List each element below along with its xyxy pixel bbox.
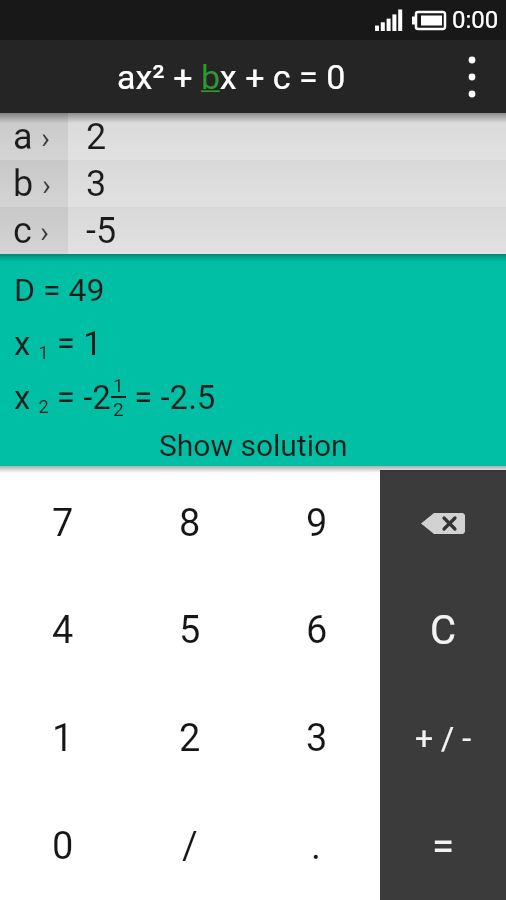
button[interactable] — [380, 470, 506, 577]
staticText: = — [432, 823, 454, 870]
button[interactable]: 0 — [0, 792, 126, 900]
staticText: + / - — [415, 719, 472, 757]
staticText: 1 — [113, 374, 124, 396]
staticText: D = 49 — [14, 271, 105, 309]
staticText: 8 — [179, 501, 201, 546]
staticText: = -2.5 — [126, 378, 216, 417]
staticText: x 2 = -2 — [14, 378, 111, 417]
button[interactable]: 9 — [253, 470, 380, 577]
button[interactable]: 6 — [253, 577, 380, 684]
button[interactable] — [462, 40, 506, 113]
staticText: Show solution — [159, 428, 348, 463]
button[interactable]: c — [0, 207, 506, 254]
staticText: 6 — [306, 608, 328, 653]
button[interactable]: 8 — [126, 470, 253, 577]
staticText: 2 — [179, 716, 201, 761]
button[interactable]: C — [380, 577, 506, 684]
staticText: x 1 = 1 — [14, 324, 102, 363]
staticText: / — [182, 824, 198, 869]
staticText: 3 — [306, 716, 328, 761]
staticText: 3 — [86, 163, 107, 205]
button[interactable]: 5 — [126, 577, 253, 684]
staticText: 2 — [86, 116, 107, 158]
staticText: › — [42, 167, 52, 202]
button[interactable]: . — [253, 792, 380, 900]
staticText: c — [13, 210, 32, 252]
staticText: . — [311, 824, 322, 869]
button[interactable]: 4 — [0, 577, 126, 684]
staticText: › — [41, 120, 51, 155]
button[interactable]: b — [0, 160, 506, 207]
staticText: › — [40, 214, 50, 249]
staticText: C — [430, 607, 457, 654]
button[interactable]: 7 — [0, 470, 126, 577]
button[interactable]: / — [126, 792, 253, 900]
button[interactable]: 2 — [126, 684, 253, 792]
staticText: 4 — [52, 608, 74, 653]
staticText: 2 — [113, 398, 124, 420]
button[interactable]: + / - — [380, 684, 506, 792]
staticText: 0 — [52, 824, 74, 869]
staticText: -5 — [86, 210, 117, 252]
staticText: 5 — [179, 608, 201, 653]
staticText: ax² + bx + c = 0 — [117, 57, 346, 97]
button[interactable]: Show solution — [159, 428, 348, 463]
staticText: 1 — [52, 716, 74, 761]
staticText: 7 — [52, 501, 74, 546]
staticText: 0:00 — [452, 6, 499, 34]
staticText: 9 — [306, 501, 328, 546]
staticText: b — [13, 163, 34, 205]
button[interactable]: 1 — [0, 684, 126, 792]
button[interactable]: = — [380, 792, 506, 900]
button[interactable]: a — [0, 113, 506, 160]
button[interactable]: 3 — [253, 684, 380, 792]
staticText: a — [13, 116, 33, 158]
